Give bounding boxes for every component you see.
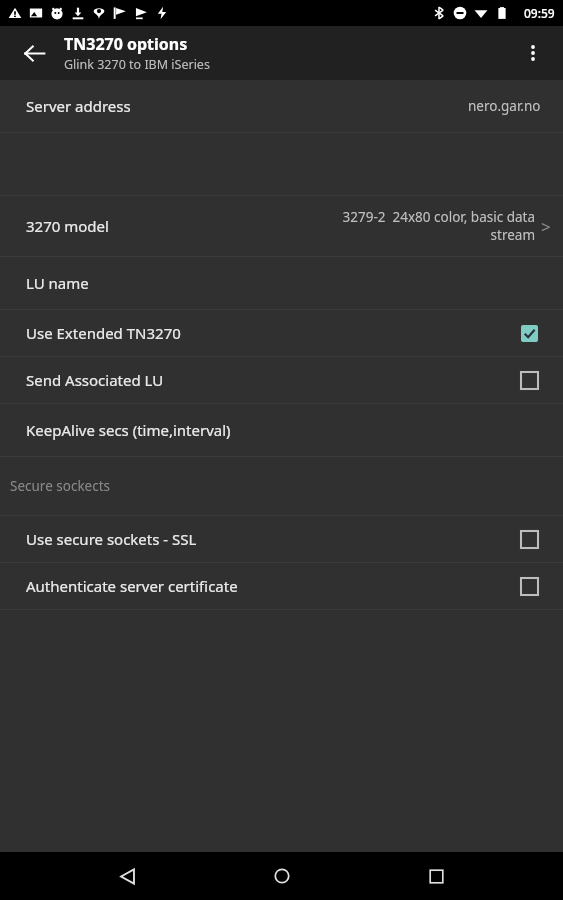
button[interactable]: Authenticate server certificate (0, 563, 563, 609)
staticText: > (541, 215, 551, 238)
button[interactable]: Use secure sockets - SSL (0, 516, 563, 562)
button[interactable]: More options (511, 31, 555, 75)
staticText: Use Extended TN3270 (26, 323, 519, 343)
button[interactable]: Back (12, 31, 56, 75)
staticText: Authenticate server certificate (26, 576, 519, 596)
staticText: KeepAlive secs (time,interval) (26, 420, 231, 440)
staticText: TN3270 options (64, 33, 188, 55)
staticText: Secure sockects (10, 477, 111, 495)
staticText: 3279-2 24x80 color, basic data stream (325, 208, 535, 244)
button[interactable]: Back (99, 852, 155, 900)
button[interactable]: Use Extended TN3270 (0, 310, 563, 356)
button[interactable]: Home (254, 852, 310, 900)
button[interactable]: LU name (0, 257, 563, 309)
staticText: 3270 model (26, 216, 109, 236)
button[interactable]: Server address (0, 80, 563, 132)
staticText: Server address (26, 96, 468, 116)
staticText: Glink 3270 to IBM iSeries (64, 56, 210, 73)
button[interactable]: Send Associated LU (0, 357, 563, 403)
button[interactable]: 3270 model (0, 196, 563, 256)
staticText: Use secure sockets - SSL (26, 529, 519, 549)
staticText: Send Associated LU (26, 370, 519, 390)
staticText: LU name (26, 273, 89, 293)
button[interactable]: KeepAlive secs (time,interval) (0, 404, 563, 456)
staticText: nero.gar.no (468, 97, 541, 115)
button[interactable]: Recent apps (408, 852, 464, 900)
staticText: 09:59 (524, 5, 555, 21)
